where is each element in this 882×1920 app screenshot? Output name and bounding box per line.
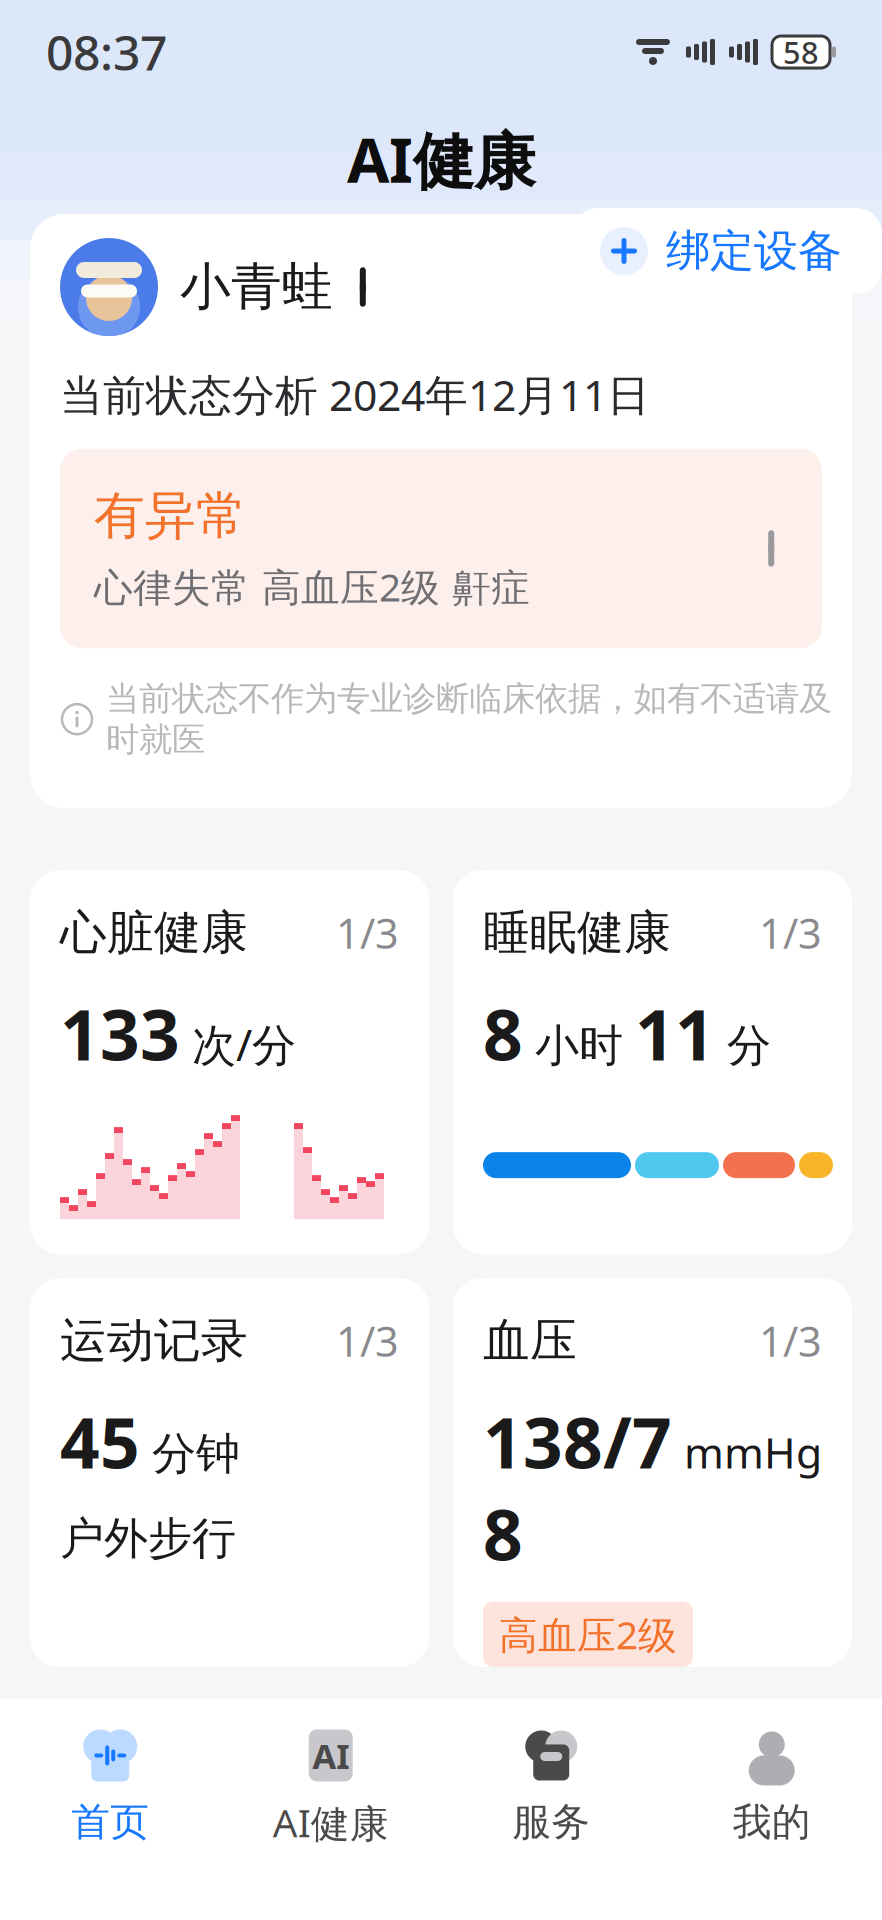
staticText: 58 [783,32,819,72]
staticText: AI健康 [273,1796,389,1848]
staticText: 高血压2级 [499,1609,677,1660]
staticText: 8 [483,987,523,1079]
button[interactable]: 血压 [453,1278,852,1667]
button[interactable]: AI [220,1716,441,1856]
staticText: 我的 [733,1798,811,1846]
staticText: AI [312,1732,349,1778]
staticText: 08:37 [46,20,167,84]
staticText: 小时 [535,1019,623,1073]
staticText: 服务 [512,1798,590,1846]
staticText: 分 [727,1019,771,1073]
staticText: 1/3 [336,1313,399,1368]
staticText: 11 [635,987,715,1079]
button[interactable]: 运动记录 [30,1278,429,1667]
staticText: 绑定设备 [666,224,842,278]
staticText: 138/78 [483,1395,672,1579]
staticText: 运动记录 [60,1312,248,1369]
staticText: 45 [60,1395,140,1487]
staticText: 当前状态不作为专业诊断临床依据，如有不适请及时就医 [106,678,832,760]
button[interactable]: 心脏健康 [30,870,429,1254]
staticText: 心脏健康 [60,904,248,961]
button[interactable]: 小青蛙 [30,214,852,344]
staticText: mmHg [684,1423,822,1480]
staticText: 首页 [71,1798,149,1846]
staticText: 1/3 [336,905,399,960]
button[interactable]: 睡眠健康 [453,870,852,1254]
staticText: 户外步行 [60,1511,236,1565]
staticText: 血压 [483,1312,577,1369]
button[interactable]: 有异常 [60,449,822,648]
staticText: 133 [60,987,180,1079]
staticText: AI健康 [347,118,535,200]
staticText: 小青蛙 [180,256,333,318]
button[interactable]: 绑定设备 [572,208,882,294]
staticText: 次/分 [192,1015,296,1073]
staticText: 1/3 [759,1313,822,1368]
staticText: 心律失常 高血压2级 鼾症 [94,561,530,612]
staticText: 1/3 [759,905,822,960]
staticText: 分钟 [152,1427,240,1481]
staticText: 有异常 [94,485,247,547]
staticText: 当前状态分析 2024年12月11日 [60,366,650,423]
button[interactable]: 首页 [0,1718,220,1854]
staticText: 睡眠健康 [483,904,671,961]
button[interactable]: 服务 [441,1718,661,1854]
button[interactable]: 我的 [661,1718,882,1854]
